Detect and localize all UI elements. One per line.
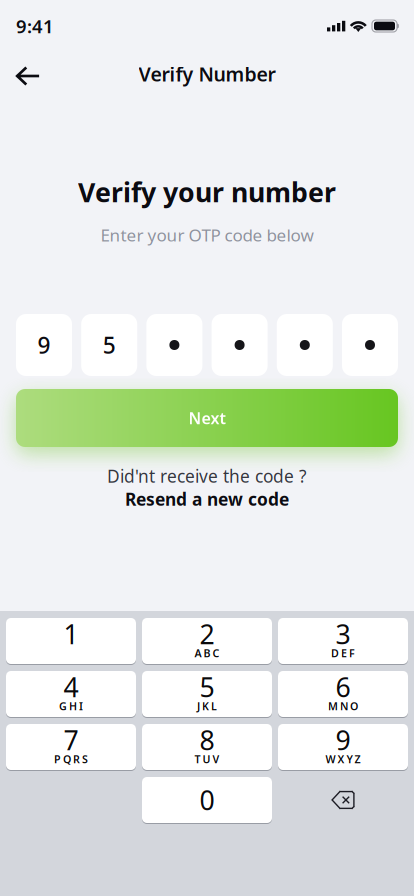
staticText: 9 — [37, 330, 50, 360]
staticText: Did'nt receive the code ? — [107, 464, 307, 487]
staticText: 8 — [199, 722, 214, 758]
staticText: Verify Number — [138, 61, 275, 87]
staticText: 0 — [199, 782, 214, 818]
staticText: A B C — [194, 646, 219, 660]
staticText: 5 — [103, 330, 116, 360]
staticText: M N O — [328, 699, 358, 713]
staticText: W X Y Z — [325, 752, 360, 766]
staticText: D E F — [331, 646, 355, 660]
button[interactable]: 9 — [278, 724, 408, 770]
staticText: 2 — [199, 616, 214, 652]
staticText: 5 — [199, 669, 214, 705]
staticText: 1 — [63, 616, 78, 652]
staticText: 7 — [63, 722, 78, 758]
staticText: Verify your number — [78, 174, 336, 210]
button[interactable]: Next — [16, 389, 398, 447]
staticText: Enter your OTP code below — [100, 223, 313, 247]
staticText: T U V — [194, 752, 219, 766]
button[interactable]: 4 — [6, 671, 136, 717]
button[interactable]: 5 — [142, 671, 272, 717]
staticText: 9 — [335, 722, 350, 758]
button[interactable]: 6 — [278, 671, 408, 717]
button[interactable]: 0 — [142, 777, 272, 823]
staticText: J K L — [197, 699, 217, 713]
staticText: 6 — [335, 669, 350, 705]
button[interactable]: 8 — [142, 724, 272, 770]
button[interactable]: Resend a new code — [0, 489, 414, 509]
staticText: Next — [188, 407, 225, 429]
staticText: P Q R S — [54, 752, 88, 766]
button[interactable]: Back — [6, 54, 50, 98]
staticText: Resend a new code — [125, 487, 289, 510]
button[interactable]: Delete — [278, 777, 408, 823]
staticText: G H I — [59, 699, 83, 713]
button[interactable]: 2 — [142, 618, 272, 664]
button[interactable]: 3 — [278, 618, 408, 664]
staticText: 9:41 — [16, 13, 54, 39]
button[interactable]: 7 — [6, 724, 136, 770]
staticText: 3 — [335, 616, 350, 652]
staticText: 4 — [63, 669, 78, 705]
button[interactable]: 1 — [6, 618, 136, 664]
